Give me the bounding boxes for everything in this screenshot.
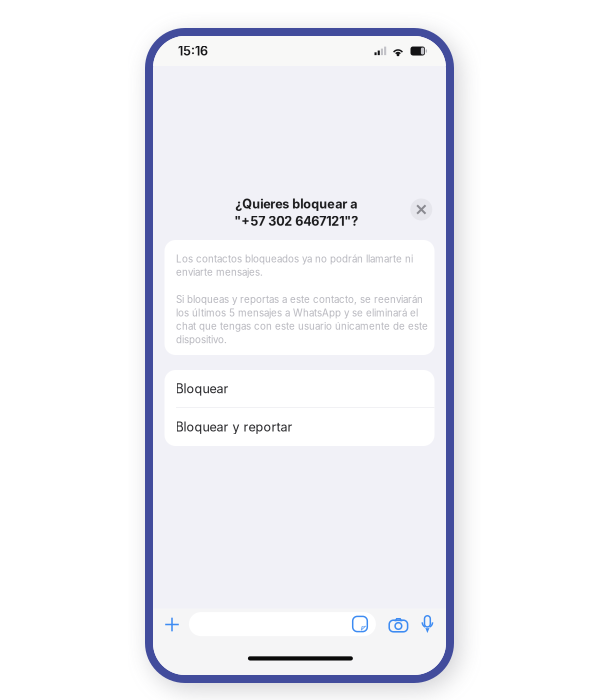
- staticText: 15:16: [178, 43, 208, 59]
- staticText: ¿Quieres bloquear a: [235, 196, 357, 211]
- staticText: Si bloqueas y reportas a este contacto, …: [176, 294, 428, 346]
- button[interactable]: Cámara: [386, 613, 410, 637]
- button[interactable]: Cerrar: [406, 194, 436, 224]
- staticText: "+57 302 6467121"?: [234, 213, 358, 229]
- button[interactable]: Stickers: [349, 613, 371, 635]
- staticText: Los contactos bloqueados ya no podrán ll…: [176, 253, 413, 278]
- button[interactable]: Bloquear: [164, 370, 434, 407]
- button[interactable]: Adjuntar: [159, 611, 185, 637]
- staticText: Bloquear y reportar: [175, 419, 292, 434]
- staticText: Bloquear: [175, 381, 228, 396]
- button[interactable]: Mensaje de voz: [417, 612, 437, 636]
- button[interactable]: Bloquear y reportar: [164, 408, 434, 446]
